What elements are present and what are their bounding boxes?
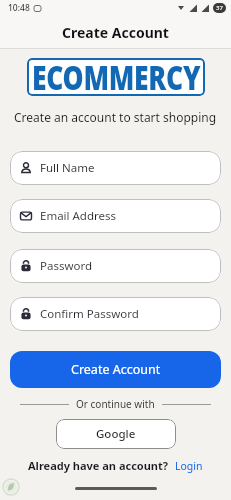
staticText: Full Name [40,160,95,176]
staticText: Google [96,426,136,442]
button[interactable]: Password [10,249,221,283]
button[interactable]: Email Address [10,199,221,233]
button[interactable]: Login [175,459,203,473]
staticText: Already have an account? [28,458,169,473]
staticText: 10:48 [8,2,30,14]
button[interactable]: Google [56,419,176,449]
staticText: Password [40,258,93,274]
staticText: Or continue with [76,397,155,411]
staticText: Create Account [71,361,161,378]
staticText: Create an account to start shopping [14,109,217,125]
button[interactable]: Create Account [10,351,221,388]
staticText: Create Account [62,23,169,42]
staticText: 37 [216,4,223,12]
staticText: ECOMMERCY [32,58,201,96]
button[interactable]: Full Name [10,151,221,185]
button[interactable]: Confirm Password [10,297,221,331]
staticText: Confirm Password [40,306,139,322]
staticText: Email Address [40,208,117,224]
